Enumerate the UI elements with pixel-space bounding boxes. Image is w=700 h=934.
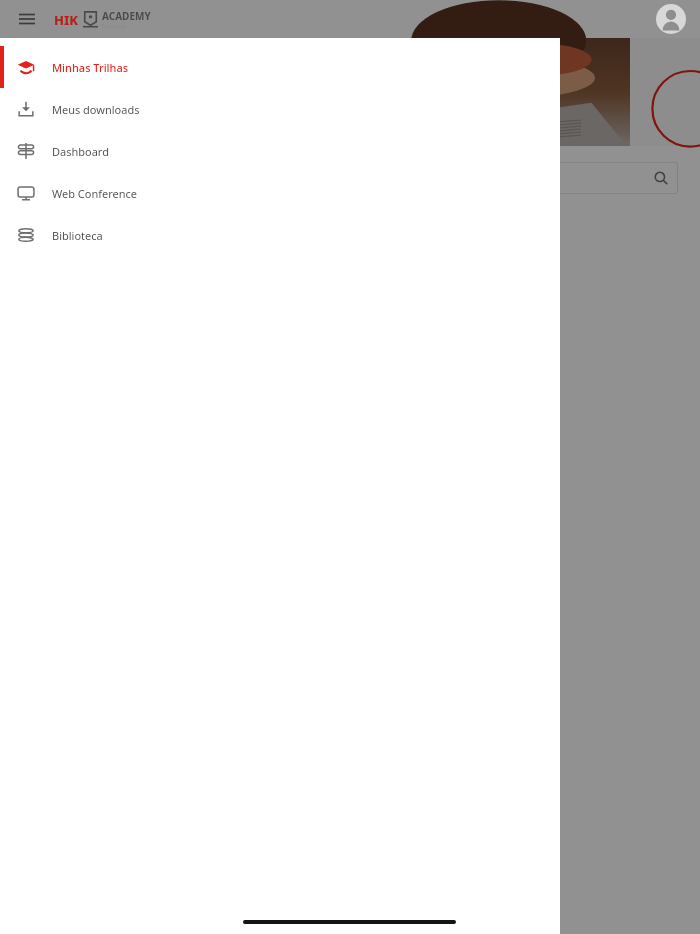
staticText: Web Conference: [52, 186, 138, 201]
button[interactable]: Meus downloads: [0, 88, 560, 130]
button[interactable]: Buscar cursos: [440, 162, 678, 194]
staticText: Biblioteca: [52, 228, 103, 243]
button[interactable]: Minhas Trilhas: [0, 46, 560, 88]
button[interactable]: Account profile: [656, 4, 686, 34]
button[interactable]: Dashboard: [0, 130, 560, 172]
staticText: Dashboard: [52, 144, 109, 159]
button[interactable]: Biblioteca: [0, 214, 560, 256]
staticText: HIK: [54, 11, 79, 29]
button[interactable]: Open navigation menu: [14, 6, 40, 32]
staticText: Minhas Trilhas: [52, 60, 129, 75]
staticText: Meus downloads: [52, 102, 140, 117]
staticText: ACADEMY: [102, 9, 151, 23]
button[interactable]: Web Conference: [0, 172, 560, 214]
